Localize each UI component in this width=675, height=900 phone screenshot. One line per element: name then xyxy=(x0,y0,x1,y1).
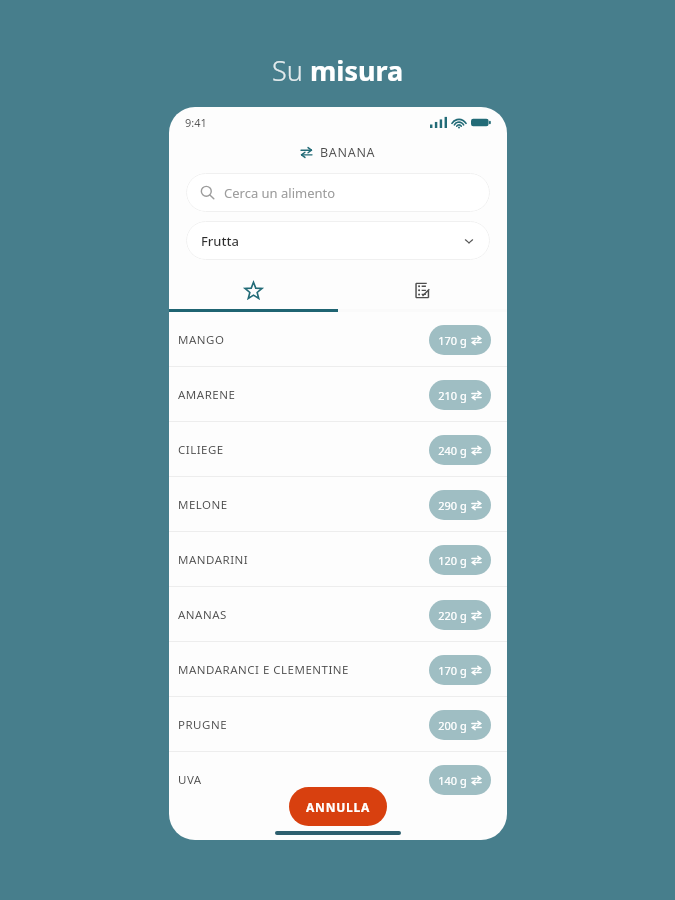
staticText: PRUGNE xyxy=(178,717,228,733)
staticText: 220 g xyxy=(438,608,467,623)
staticText: AMARENE xyxy=(178,387,236,403)
button[interactable]: Cerca un alimento xyxy=(186,173,490,212)
button[interactable]: 140 g xyxy=(429,765,491,795)
button[interactable]: ANANAS xyxy=(169,587,507,642)
staticText: Frutta xyxy=(201,232,239,250)
button[interactable]: MANGO xyxy=(169,312,507,367)
staticText: ANANAS xyxy=(178,607,227,623)
button[interactable]: 290 g xyxy=(429,490,491,520)
staticText: 210 g xyxy=(438,388,467,403)
button[interactable]: CILIEGE xyxy=(169,422,507,477)
staticText: 120 g xyxy=(438,553,467,568)
staticText: 240 g xyxy=(438,443,467,458)
button[interactable]: BANANA xyxy=(169,137,507,167)
button[interactable]: 170 g xyxy=(429,655,491,685)
staticText: MANDARANCI E CLEMENTINE xyxy=(178,662,349,678)
button[interactable]: All foods xyxy=(338,272,507,309)
button[interactable]: UVA xyxy=(169,752,507,807)
button[interactable]: MELONE xyxy=(169,477,507,532)
staticText: Cerca un alimento xyxy=(224,184,336,202)
staticText: BANANA xyxy=(320,144,376,161)
staticText: 290 g xyxy=(438,498,467,513)
button[interactable]: Favourites xyxy=(169,272,338,309)
button[interactable]: MANDARANCI E CLEMENTINE xyxy=(169,642,507,697)
staticText: Su xyxy=(272,52,310,89)
staticText: MELONE xyxy=(178,497,228,513)
button[interactable]: 220 g xyxy=(429,600,491,630)
button[interactable]: 120 g xyxy=(429,545,491,575)
button[interactable]: PRUGNE xyxy=(169,697,507,752)
staticText: MANDARINI xyxy=(178,552,249,568)
button[interactable]: 200 g xyxy=(429,710,491,740)
staticText: CILIEGE xyxy=(178,442,224,458)
button[interactable]: 210 g xyxy=(429,380,491,410)
button[interactable]: ANNULLA xyxy=(289,787,387,826)
staticText: MANGO xyxy=(178,332,225,348)
button[interactable]: MANDARINI xyxy=(169,532,507,587)
button[interactable]: AMARENE xyxy=(169,367,507,422)
staticText: ANNULLA xyxy=(306,799,371,815)
staticText: 170 g xyxy=(438,663,467,678)
staticText: 200 g xyxy=(438,718,467,733)
staticText: 140 g xyxy=(438,773,467,788)
button[interactable]: Frutta xyxy=(186,221,490,260)
button[interactable]: 240 g xyxy=(429,435,491,465)
staticText: misura xyxy=(310,52,404,89)
staticText: 170 g xyxy=(438,333,467,348)
staticText: 9:41 xyxy=(185,115,207,130)
button[interactable]: 170 g xyxy=(429,325,491,355)
staticText: UVA xyxy=(178,772,202,788)
